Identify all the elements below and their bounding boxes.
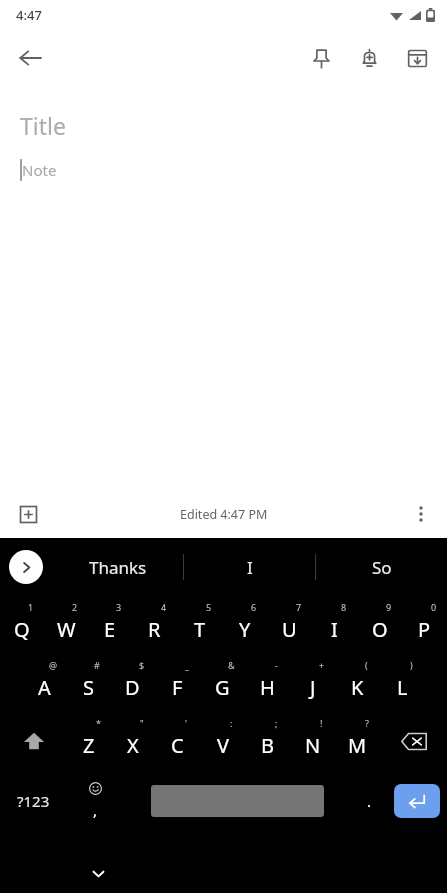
staticText: O: [372, 616, 388, 643]
staticText: Thanks: [89, 556, 147, 579]
button[interactable]: ;: [245, 712, 290, 770]
button[interactable]: :: [200, 712, 245, 770]
button[interactable]: Space: [124, 770, 351, 832]
staticText: :: [230, 717, 233, 729]
button[interactable]: Add reminder: [345, 34, 393, 82]
staticText: R: [148, 616, 161, 643]
staticText: S: [83, 674, 94, 701]
button[interactable]: More suggestions: [9, 550, 43, 584]
button[interactable]: Thanks: [52, 538, 183, 596]
staticText: Note: [22, 160, 57, 180]
button[interactable]: _: [155, 654, 200, 712]
staticText: V: [217, 732, 229, 759]
button[interactable]: Enter: [387, 770, 447, 832]
staticText: 9: [386, 601, 392, 613]
button[interactable]: 2: [44, 596, 88, 654]
staticText: !: [320, 717, 323, 729]
staticText: 0: [431, 601, 437, 613]
staticText: G: [215, 674, 230, 701]
staticText: 5: [206, 601, 212, 613]
staticText: E: [104, 616, 116, 643]
button[interactable]: I: [184, 538, 315, 596]
button[interactable]: Add: [8, 494, 48, 534]
staticText: I: [247, 556, 253, 579]
button[interactable]: 1: [0, 596, 44, 654]
button[interactable]: Back: [6, 34, 54, 82]
button[interactable]: More options: [401, 494, 441, 534]
staticText: Title: [20, 110, 66, 141]
staticText: 8: [341, 601, 347, 613]
button[interactable]: @: [22, 654, 66, 712]
staticText: D: [125, 674, 140, 701]
button[interactable]: *: [67, 712, 111, 770]
button[interactable]: ?123: [0, 770, 67, 832]
staticText: J: [310, 674, 316, 701]
staticText: B: [261, 732, 274, 759]
button[interactable]: ?: [335, 712, 380, 770]
button[interactable]: ': [155, 712, 200, 770]
staticText: $: [139, 659, 145, 671]
button[interactable]: 4: [132, 596, 177, 654]
button[interactable]: .: [351, 770, 387, 832]
button[interactable]: Emoji and comma: [67, 770, 124, 832]
staticText: Edited 4:47 PM: [180, 506, 268, 523]
button[interactable]: Hide keyboard: [80, 855, 116, 891]
staticText: ): [410, 659, 413, 671]
staticText: So: [372, 556, 392, 579]
staticText: &: [228, 659, 235, 671]
button[interactable]: ": [111, 712, 155, 770]
button[interactable]: -: [245, 654, 290, 712]
staticText: ': [185, 717, 188, 729]
button[interactable]: !: [290, 712, 335, 770]
staticText: +: [319, 659, 325, 671]
button[interactable]: 5: [177, 596, 222, 654]
staticText: Z: [83, 732, 95, 759]
staticText: U: [282, 616, 297, 643]
staticText: ,: [93, 800, 98, 820]
staticText: .: [367, 791, 372, 811]
button[interactable]: Pin: [297, 34, 345, 82]
staticText: ;: [275, 717, 278, 729]
staticText: #: [94, 659, 100, 671]
staticText: 7: [296, 601, 302, 613]
staticText: ": [140, 717, 144, 729]
staticText: C: [171, 732, 184, 759]
staticText: 6: [251, 601, 257, 613]
staticText: (: [365, 659, 368, 671]
staticText: Q: [14, 616, 30, 643]
staticText: N: [305, 732, 321, 759]
button[interactable]: 7: [267, 596, 312, 654]
staticText: _: [185, 659, 189, 671]
staticText: F: [172, 674, 183, 701]
staticText: -: [275, 659, 278, 671]
staticText: Y: [239, 616, 251, 643]
button[interactable]: (: [335, 654, 380, 712]
button[interactable]: So: [316, 538, 447, 596]
button[interactable]: Archive: [393, 34, 441, 82]
staticText: 3: [116, 601, 122, 613]
button[interactable]: $: [110, 654, 155, 712]
staticText: @: [49, 659, 58, 671]
staticText: 4:47: [16, 6, 42, 24]
staticText: K: [351, 674, 364, 701]
staticText: I: [331, 616, 338, 643]
button[interactable]: 9: [357, 596, 402, 654]
staticText: A: [38, 674, 51, 701]
button[interactable]: 3: [88, 596, 132, 654]
staticText: 1: [28, 601, 34, 613]
button[interactable]: 6: [222, 596, 267, 654]
button[interactable]: 8: [312, 596, 357, 654]
button[interactable]: &: [200, 654, 245, 712]
staticText: T: [194, 616, 206, 643]
staticText: *: [96, 717, 101, 729]
staticText: ?: [365, 717, 369, 729]
staticText: L: [397, 674, 408, 701]
button[interactable]: 0: [402, 596, 447, 654]
staticText: H: [260, 674, 275, 701]
button[interactable]: ): [380, 654, 425, 712]
button[interactable]: #: [66, 654, 110, 712]
button[interactable]: +: [290, 654, 335, 712]
button[interactable]: Shift: [0, 712, 67, 770]
button[interactable]: Backspace: [380, 712, 447, 770]
staticText: 2: [72, 601, 78, 613]
